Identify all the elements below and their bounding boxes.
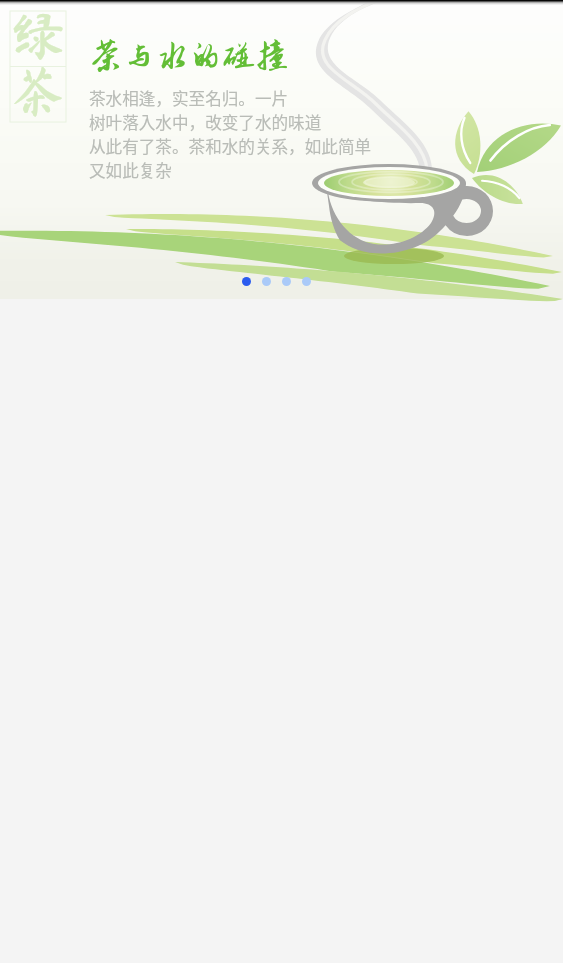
staticText: 茶与水的碰撞 (89, 37, 289, 74)
button[interactable]: 绿茶 (0, 0, 563, 299)
staticText: 茶水相逢，实至名归。一片 (89, 86, 289, 110)
button[interactable]: Page 3 (282, 277, 291, 286)
button[interactable]: Page 2 (262, 277, 271, 286)
staticText: 又如此复杂 (89, 158, 172, 182)
button[interactable]: Page 1 (242, 277, 251, 286)
staticText: 绿 (11, 8, 65, 62)
staticText: 树叶落入水中，改变了水的味道 (89, 110, 322, 134)
staticText: 从此有了茶。茶和水的关系，如此简单 (89, 134, 372, 158)
button[interactable]: 绿茶 (10, 11, 66, 122)
staticText: 茶 (11, 63, 65, 117)
button[interactable]: Page 4 (302, 277, 311, 286)
